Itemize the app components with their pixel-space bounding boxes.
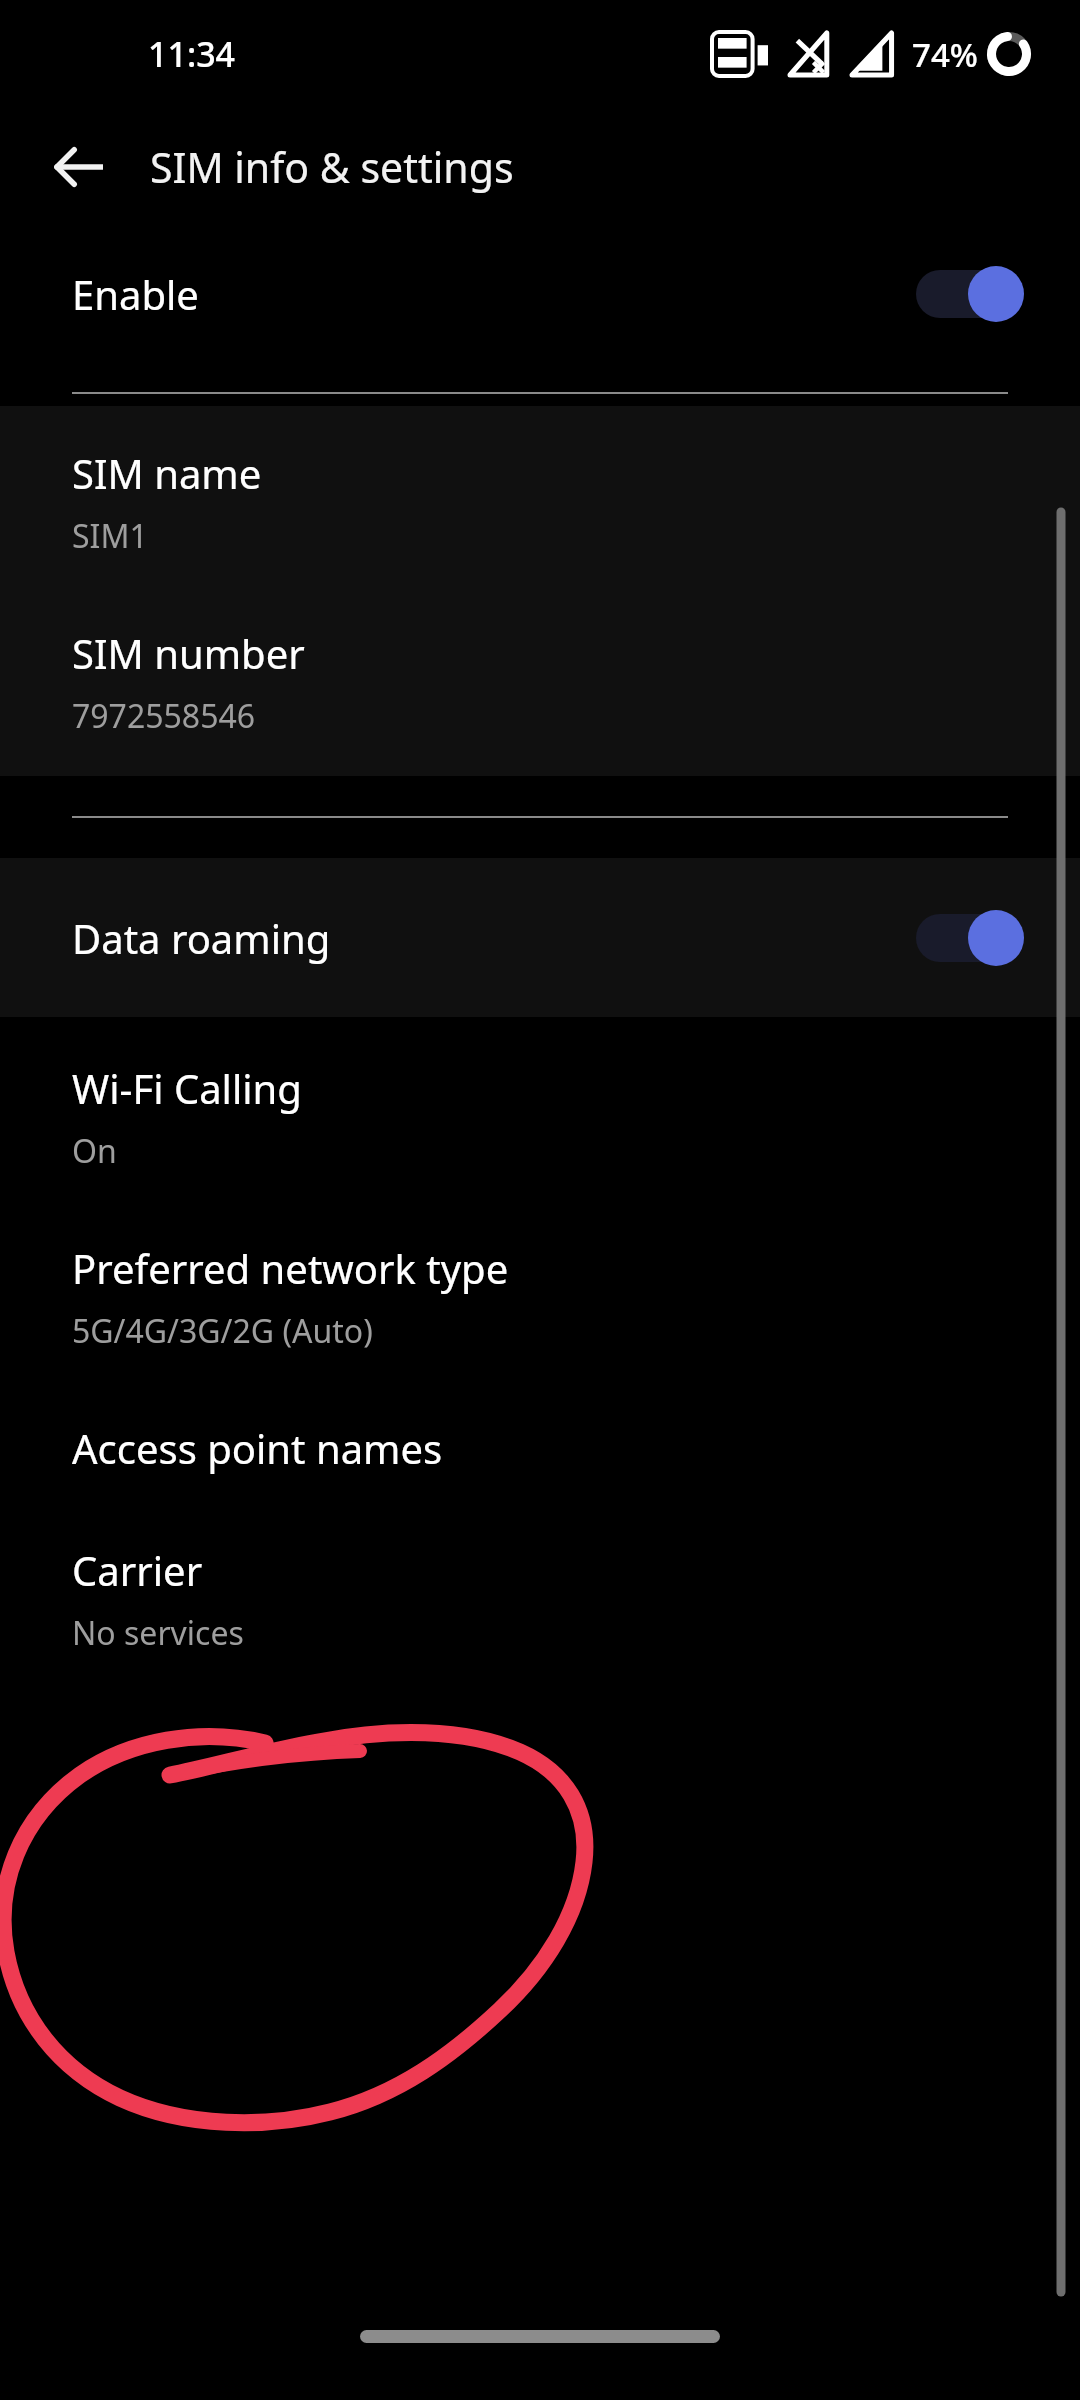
staticText: 11:34 [148, 31, 236, 77]
button[interactable]: Carrier [0, 1509, 1080, 1689]
staticText: SIM number [72, 626, 305, 680]
staticText: Access point names [72, 1421, 443, 1475]
button[interactable]: SIM name [0, 406, 1080, 592]
staticText: 74% [912, 32, 978, 77]
staticText: Wi-Fi Calling [72, 1061, 302, 1115]
staticText: 7972558546 [72, 694, 256, 738]
button[interactable]: Data roaming [0, 858, 1080, 1017]
staticText: Enable [72, 267, 199, 321]
staticText: 5G/4G/3G/2G (Auto) [72, 1309, 373, 1353]
button[interactable]: Enable [0, 226, 1080, 362]
staticText: On [72, 1129, 117, 1173]
staticText: Data roaming [72, 911, 331, 965]
button[interactable]: Back [38, 126, 120, 208]
button[interactable]: Preferred network type [0, 1207, 1080, 1387]
button[interactable]: SIM number [0, 592, 1080, 776]
button[interactable]: Access point names [0, 1387, 1080, 1509]
staticText: No services [72, 1611, 244, 1655]
staticText: Carrier [72, 1543, 203, 1597]
staticText: Preferred network type [72, 1241, 509, 1295]
button[interactable]: Wi-Fi Calling [0, 1017, 1080, 1207]
staticText: SIM info & settings [150, 139, 514, 195]
staticText: SIM1 [72, 514, 148, 558]
staticText: SIM name [72, 446, 262, 500]
